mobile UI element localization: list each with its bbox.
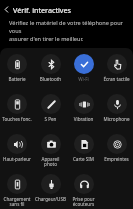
staticText: Wi-Fi (68, 76, 99, 82)
staticText: Vibration (68, 116, 99, 122)
button[interactable]: S Pen (34, 94, 67, 122)
staticText: Carte SIM (68, 156, 99, 162)
staticText: Haut-parleur (1, 156, 33, 162)
staticText: Touches fonc. (1, 116, 33, 122)
button[interactable]: Touches fonc. (0, 94, 34, 122)
staticText: Prise pour écouteurs (68, 196, 99, 208)
staticText: Empreintes (101, 156, 132, 162)
button[interactable]: Appareil photo (34, 134, 67, 168)
button[interactable]: Chargement sans fil (0, 174, 34, 208)
staticText: Chargeur/USB (35, 196, 66, 202)
button[interactable]: Vibration (67, 94, 100, 122)
button[interactable]: Prise pour écouteurs (67, 174, 100, 208)
staticText: Microphone (101, 116, 132, 122)
button[interactable]: Écran tactile (100, 54, 133, 82)
button[interactable]: Carte SIM (67, 134, 100, 162)
staticText: Appareil photo (35, 156, 66, 168)
button[interactable]: Microphone (100, 94, 133, 122)
button[interactable]: Bluetooth (34, 54, 67, 82)
staticText: Batterie (1, 76, 33, 82)
button[interactable]: Haut-parleur (0, 134, 34, 162)
button[interactable]: Chargeur/USB (34, 174, 67, 202)
staticText: S Pen (35, 116, 66, 122)
button[interactable]: Empreintes (100, 134, 133, 162)
staticText: Vérif. interactives (13, 5, 72, 15)
staticText: Bluetooth (35, 76, 66, 82)
button[interactable]: Wi-Fi (67, 54, 100, 82)
button[interactable]: Batterie (0, 54, 34, 82)
staticText: Chargement sans fil (1, 196, 33, 208)
staticText: Vérifiez le matériel de votre téléphone … (9, 19, 127, 43)
staticText: Écran tactile (101, 76, 132, 82)
button[interactable]: Back (0, 3, 13, 16)
